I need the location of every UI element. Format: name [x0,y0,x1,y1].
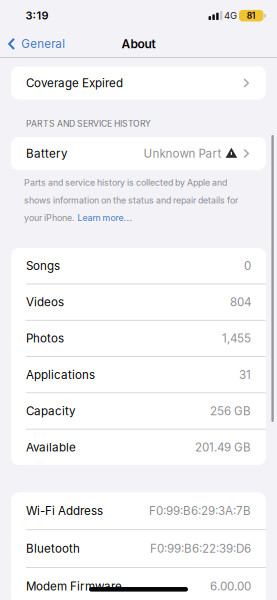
button[interactable]: Back [0,37,65,51]
staticText: F0:99:B6:22:39:D6 [150,542,251,556]
staticText: Coverage Expired [26,76,123,90]
staticText: 31 [239,368,251,382]
staticText: 4G [224,10,237,21]
staticText: PARTS AND SERVICE HISTORY [26,118,151,129]
staticText: Learn more... [77,213,132,223]
staticText: F0:99:B6:29:3A:7B [149,504,251,518]
staticText: Bluetooth [26,542,80,556]
staticText: Battery [26,146,68,160]
staticText: About [121,37,155,51]
button[interactable]: Learn more... [77,213,132,223]
staticText: Modem Firmware [26,579,122,593]
staticText: 6.00.00 [210,579,251,593]
staticText: 3:19 [25,9,48,22]
staticText: Videos [26,295,64,309]
staticText: Wi-Fi Address [26,504,103,518]
staticText: 256 GB [210,404,251,418]
staticText: 1,455 [222,331,251,345]
staticText: Applications [26,368,95,382]
staticText: Parts and service history is collected b… [24,177,227,188]
button[interactable]: Coverage Expired [0,66,277,99]
staticText: General [21,37,65,51]
staticText: 804 [230,295,251,309]
staticText: Photos [26,331,64,345]
staticText: 81 [247,11,256,21]
staticText: Available [26,440,76,454]
staticText: Capacity [26,404,76,418]
staticText: Unknown Part [143,146,221,160]
staticText: Songs [26,259,60,273]
staticText: your iPhone. [24,213,75,223]
button[interactable]: Battery [0,137,277,170]
staticText: 0 [244,259,251,273]
staticText: 201.49 GB [195,440,251,454]
staticText: shows information on the status and repa… [24,195,238,205]
